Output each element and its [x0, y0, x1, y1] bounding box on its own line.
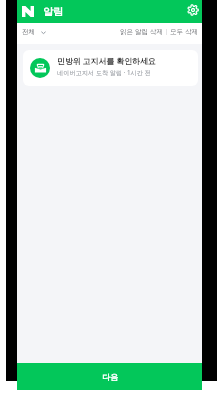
staticText: 알림 [43, 5, 63, 18]
button[interactable]: 전체 [22, 28, 46, 36]
staticText: 전체 [22, 28, 36, 36]
staticText: 네이버고지서 도착 알림 · 1시간 전 [57, 68, 151, 76]
staticText: 다음 [102, 372, 118, 382]
staticText: 민방위 고지서를 확인하세요 [57, 56, 156, 67]
button[interactable]: 민방위 고지서를 확인하세요 [23, 50, 198, 86]
button[interactable]: 다음 [17, 363, 202, 390]
button[interactable]: Settings [185, 2, 201, 18]
button[interactable]: 읽은 알림 삭제 [120, 27, 163, 36]
button[interactable]: 모두 삭제 [170, 27, 199, 36]
